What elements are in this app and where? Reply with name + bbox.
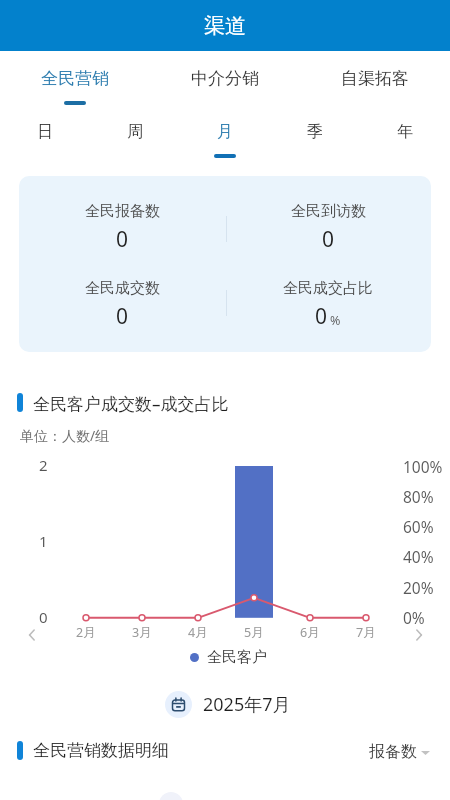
staticText: 年 [397, 122, 413, 142]
button[interactable]: 月 [180, 107, 270, 162]
staticText: % [330, 312, 341, 329]
staticText: 全民成交数 [85, 279, 160, 298]
staticText: 全民成交占比 [283, 279, 373, 298]
staticText: 0 [39, 607, 48, 627]
staticText: 0 [116, 225, 129, 254]
staticText: 2025年7月 [203, 692, 291, 717]
button[interactable]: 中介分销 [150, 51, 300, 107]
staticText: 4月 [188, 624, 208, 641]
button[interactable]: 日 [0, 107, 90, 162]
staticText: 0 [315, 302, 328, 331]
staticText: 全民到访数 [291, 202, 366, 221]
staticText: 月 [217, 122, 233, 142]
staticText: 渠道 [204, 13, 246, 39]
button[interactable]: 年 [360, 107, 450, 162]
staticText: 全民营销数据明细 [33, 740, 169, 761]
button[interactable]: 报备数 [365, 738, 434, 766]
staticText: 60% [403, 516, 434, 537]
staticText: 20% [403, 577, 434, 598]
button[interactable]: 全民到访数 [225, 202, 431, 254]
staticText: 0% [403, 607, 425, 628]
button[interactable]: 全民成交占比 [225, 279, 431, 331]
staticText: 7月 [356, 624, 376, 641]
staticText: 自渠拓客 [341, 68, 409, 89]
staticText: 2 [39, 455, 48, 475]
staticText: 全民客户 [207, 648, 267, 667]
staticText: 报备数 [369, 742, 417, 762]
staticText: 季 [307, 122, 323, 142]
staticText: 1 [39, 531, 48, 551]
staticText: 全民营销 [41, 68, 109, 89]
staticText: 周 [127, 122, 143, 142]
button[interactable]: 自渠拓客 [300, 51, 450, 107]
button[interactable]: 全民成交数 [19, 279, 225, 331]
staticText: 全民报备数 [85, 202, 160, 221]
staticText: 日 [37, 122, 53, 142]
staticText: 全民客户成交数–成交占比 [33, 392, 229, 415]
staticText: 100% [403, 456, 443, 477]
staticText: 3月 [132, 624, 152, 641]
button[interactable]: 全民报备数 [19, 202, 225, 254]
button[interactable]: 季 [270, 107, 360, 162]
staticText: 中介分销 [191, 68, 259, 89]
staticText: 40% [403, 546, 434, 567]
staticText: 2月 [76, 624, 96, 641]
button[interactable]: Previous [22, 625, 42, 645]
button[interactable]: 2025年7月 [165, 691, 291, 718]
staticText: 80% [403, 486, 434, 507]
staticText: 5月 [244, 624, 264, 641]
button[interactable]: 全民营销 [0, 51, 150, 107]
button[interactable]: Next [409, 625, 429, 645]
staticText: 6月 [300, 624, 320, 641]
staticText: 单位：人数/组 [20, 426, 110, 445]
button[interactable]: 周 [90, 107, 180, 162]
staticText: 0 [322, 225, 335, 254]
staticText: 0 [116, 302, 129, 331]
